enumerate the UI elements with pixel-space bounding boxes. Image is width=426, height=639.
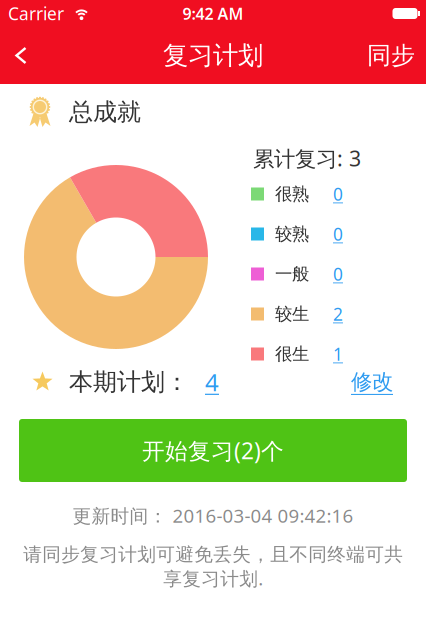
staticText: 4 <box>205 366 219 398</box>
staticText: 总成就 <box>69 97 141 127</box>
staticText: 0 <box>333 222 343 245</box>
staticText: 一般 <box>275 263 309 285</box>
staticText: 0 <box>333 262 343 285</box>
staticText: 较熟 <box>275 223 309 245</box>
button[interactable]: 1 <box>333 342 343 365</box>
staticText: 修改 <box>351 369 393 395</box>
staticText: 同步 <box>367 41 415 70</box>
button[interactable]: 0 <box>333 222 343 245</box>
button[interactable]: 同步 <box>367 41 426 70</box>
staticText: 很生 <box>275 343 309 365</box>
button[interactable]: 开始复习(2)个 <box>19 419 407 482</box>
staticText: 很熟 <box>275 183 309 205</box>
button[interactable]: 修改 <box>351 371 393 393</box>
staticText: 9:42 AM <box>182 3 243 24</box>
button[interactable]: 0 <box>333 182 343 205</box>
staticText: 更新时间： 2016-03-04 09:42:16 <box>72 503 353 528</box>
staticText: 较生 <box>275 303 309 325</box>
button[interactable]: 0 <box>333 262 343 285</box>
staticText: 累计复习: 3 <box>253 144 361 172</box>
staticText: 1 <box>333 342 343 365</box>
staticText: 复习计划 <box>163 40 263 71</box>
staticText: 2 <box>333 302 343 325</box>
staticText: Carrier <box>8 2 64 25</box>
button[interactable]: 返回 <box>0 37 27 74</box>
staticText: 0 <box>333 182 343 205</box>
staticText: 开始复习(2)个 <box>142 435 284 465</box>
staticText: 本期计划： <box>69 367 189 397</box>
button[interactable]: 4 <box>205 371 219 393</box>
staticText: 请同步复习计划可避免丢失，且不同终端可共 享复习计划. <box>23 543 403 591</box>
button[interactable]: 2 <box>333 302 343 325</box>
